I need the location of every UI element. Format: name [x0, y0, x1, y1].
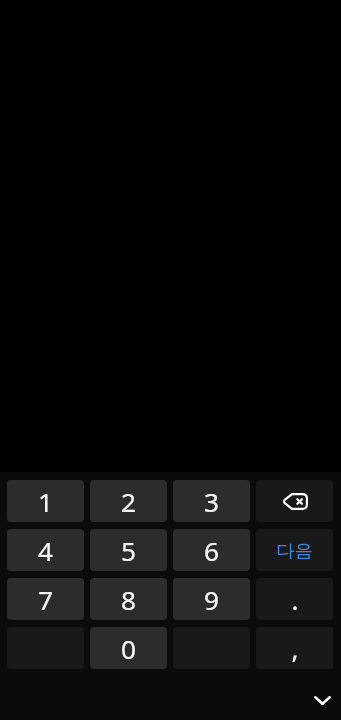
- staticText: 0: [121, 631, 136, 667]
- button[interactable]: 2: [90, 480, 167, 522]
- button[interactable]: 6: [173, 529, 250, 571]
- staticText: 1: [38, 484, 53, 520]
- staticText: 5: [121, 533, 136, 569]
- staticText: 2: [121, 484, 136, 520]
- button[interactable]: 3: [173, 480, 250, 522]
- staticText: 3: [204, 484, 219, 520]
- button[interactable]: 7: [7, 578, 84, 620]
- staticText: 7: [38, 582, 53, 618]
- button[interactable]: 0: [90, 627, 167, 669]
- button[interactable]: 1: [7, 480, 84, 522]
- staticText: .: [291, 582, 299, 618]
- staticText: 6: [204, 533, 219, 569]
- staticText: 8: [121, 582, 136, 618]
- button[interactable]: ,: [256, 627, 333, 669]
- button[interactable]: Hide keyboard: [304, 685, 340, 715]
- button[interactable]: 다음: [256, 529, 333, 571]
- button[interactable]: 5: [90, 529, 167, 571]
- staticText: 9: [204, 582, 219, 618]
- button[interactable]: 9: [173, 578, 250, 620]
- staticText: 4: [38, 533, 53, 569]
- button[interactable]: .: [256, 578, 333, 620]
- staticText: 다음: [276, 539, 313, 562]
- button[interactable]: 8: [90, 578, 167, 620]
- button[interactable]: 4: [7, 529, 84, 571]
- button[interactable]: Delete: [256, 480, 333, 522]
- staticText: ,: [291, 631, 299, 667]
